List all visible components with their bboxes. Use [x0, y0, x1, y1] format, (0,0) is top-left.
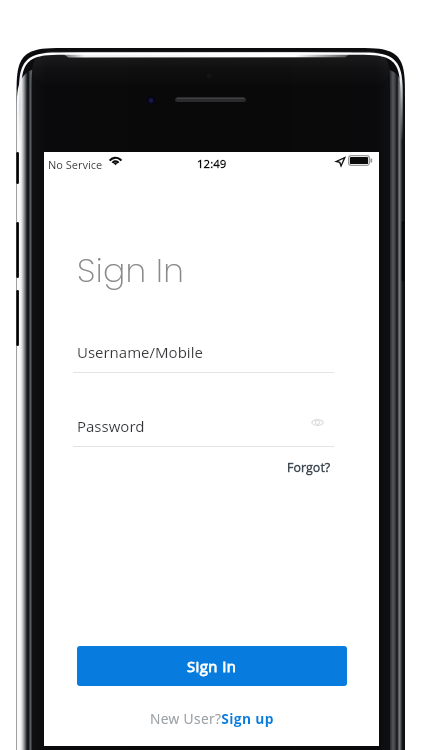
staticText: No Service [48, 157, 103, 172]
staticText: Password [77, 416, 145, 436]
staticText: Forgot? [287, 459, 331, 476]
button[interactable]: Forgot? [283, 455, 335, 480]
staticText: Sign In [77, 247, 185, 293]
staticText: Username/Mobile [77, 342, 203, 362]
staticText: Sign In [187, 656, 237, 676]
button[interactable]: Show password [306, 411, 328, 433]
button[interactable]: Sign In [77, 646, 347, 686]
button[interactable]: New User?Sign up [146, 705, 278, 732]
staticText: 12:49 [197, 156, 227, 172]
staticText: New User?Sign up [150, 709, 274, 728]
